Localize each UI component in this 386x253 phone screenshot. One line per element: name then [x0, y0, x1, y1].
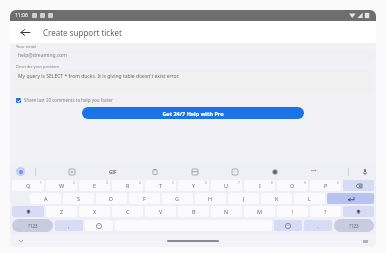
button[interactable]: Y: [178, 180, 209, 191]
button[interactable]: B: [178, 206, 209, 217]
staticText: F: [143, 195, 146, 202]
button[interactable]: Keyboard layout: [362, 238, 368, 244]
button[interactable]: C: [112, 206, 143, 217]
staticText: D: [109, 195, 114, 202]
button[interactable]: Google: [16, 167, 25, 176]
button[interactable]: T: [145, 180, 176, 191]
staticText: W: [59, 182, 65, 189]
button[interactable]: L: [294, 193, 325, 204]
staticText: 6: [205, 181, 207, 185]
staticText: A: [44, 195, 48, 202]
staticText: P: [324, 182, 328, 189]
staticText: Your email: [16, 44, 36, 49]
button[interactable]: ?123: [12, 219, 53, 232]
button[interactable]: Voice input: [359, 166, 370, 177]
button[interactable]: V: [145, 206, 176, 217]
staticText: E: [93, 182, 97, 189]
button[interactable]: U: [211, 180, 242, 191]
button[interactable]: X: [79, 206, 110, 217]
button[interactable]: O: [277, 180, 308, 191]
button[interactable]: K: [261, 193, 292, 204]
button[interactable]: Shift: [343, 206, 374, 217]
staticText: Z: [60, 208, 64, 215]
staticText: J: [243, 195, 245, 202]
button[interactable]: A: [30, 193, 61, 204]
button[interactable]: Back: [16, 23, 34, 41]
button[interactable]: Backspace: [343, 180, 374, 191]
staticText: T: [159, 182, 163, 189]
staticText: M: [257, 208, 262, 215]
staticText: ?: [324, 208, 327, 215]
staticText: 5: [172, 181, 174, 185]
staticText: Describe your problem: [16, 64, 60, 69]
button[interactable]: help@dreaming.com: [14, 50, 372, 61]
button[interactable]: Enter: [327, 193, 374, 204]
button[interactable]: R: [112, 180, 143, 191]
button[interactable]: Shift: [12, 206, 44, 217]
staticText: .: [317, 222, 319, 229]
button[interactable]: Translate: [189, 166, 200, 177]
staticText: L: [308, 195, 311, 202]
button[interactable]: G: [162, 193, 193, 204]
button[interactable]: S: [63, 193, 94, 204]
staticText: ?123: [28, 223, 38, 229]
button[interactable]: F: [129, 193, 160, 204]
staticText: 1: [40, 181, 42, 185]
button[interactable]: .: [304, 220, 332, 231]
button[interactable]: N: [211, 206, 242, 217]
staticText: 8: [271, 181, 273, 185]
staticText: O: [290, 182, 295, 189]
button[interactable]: M: [244, 206, 275, 217]
button[interactable]: E: [79, 180, 110, 191]
button[interactable]: Get 24/7 Help with Pro: [82, 107, 304, 119]
staticText: ,: [68, 222, 70, 229]
button[interactable]: GIF: [107, 167, 119, 177]
button[interactable]: Share last 20 comments to help you faste…: [14, 96, 372, 104]
button[interactable]: Emoji: [85, 220, 113, 231]
staticText: 4: [139, 181, 141, 185]
staticText: 9: [304, 181, 306, 185]
staticText: Share last 20 comments to help you faste…: [24, 97, 113, 103]
staticText: H: [208, 195, 213, 202]
button[interactable]: Emoji: [274, 220, 302, 231]
button[interactable]: ?123: [334, 219, 374, 232]
staticText: •••: [311, 168, 317, 175]
button[interactable]: Clipboard: [149, 166, 160, 177]
staticText: help@dreaming.com: [18, 52, 68, 59]
staticText: ?123: [349, 223, 359, 229]
button[interactable]: P: [310, 180, 341, 191]
staticText: R: [126, 182, 130, 189]
staticText: S: [77, 195, 81, 202]
staticText: Q: [26, 182, 31, 189]
button[interactable]: Z: [46, 206, 77, 217]
button[interactable]: !: [277, 206, 308, 217]
button[interactable]: Settings: [269, 166, 280, 177]
button[interactable]: Stickers: [66, 166, 77, 177]
staticText: I: [259, 182, 261, 189]
staticText: K: [275, 195, 279, 202]
button[interactable]: I: [244, 180, 275, 191]
staticText: My query is SELECT * from ducks. It is g…: [18, 73, 180, 80]
button[interactable]: ?: [310, 206, 341, 217]
staticText: 2: [73, 181, 75, 185]
staticText: GIF: [109, 169, 117, 175]
button[interactable]: D: [96, 193, 127, 204]
staticText: X: [93, 208, 97, 215]
staticText: Create support ticket: [43, 27, 122, 38]
staticText: C: [126, 208, 130, 215]
button[interactable]: More: [309, 166, 319, 177]
staticText: G: [175, 195, 180, 202]
button[interactable]: H: [195, 193, 226, 204]
button[interactable]: Q: [12, 180, 44, 191]
button[interactable]: My query is SELECT * from ducks. It is g…: [14, 70, 372, 92]
staticText: N: [224, 208, 229, 215]
button[interactable]: J: [228, 193, 259, 204]
button[interactable]: Hide keyboard: [18, 238, 24, 244]
button[interactable]: Emoji kitchen: [229, 166, 240, 177]
button[interactable]: ,: [55, 220, 83, 231]
button[interactable]: W: [46, 180, 77, 191]
staticText: !: [292, 208, 294, 215]
staticText: U: [224, 182, 229, 189]
staticText: 3: [106, 181, 108, 185]
